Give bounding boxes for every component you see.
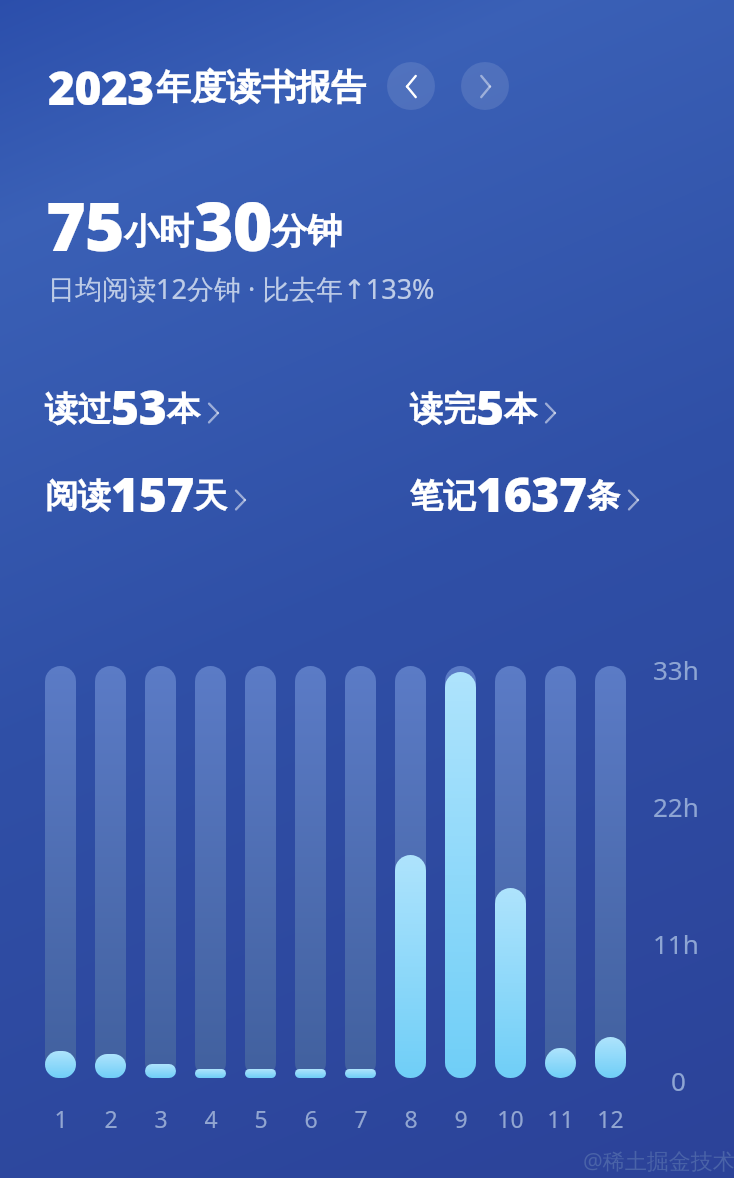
staticText: 1637	[476, 461, 587, 521]
staticText: 1	[54, 1103, 68, 1134]
button[interactable]: Next year	[461, 62, 509, 110]
staticText: 10	[497, 1103, 524, 1134]
staticText: 11	[547, 1103, 574, 1134]
staticText: 阅读	[45, 475, 111, 517]
staticText: 3	[154, 1103, 168, 1134]
button[interactable]: 阅读	[45, 461, 252, 521]
staticText: 年度读书报告	[156, 65, 366, 109]
button[interactable]: 笔记	[410, 461, 645, 521]
staticText: 天	[194, 475, 227, 517]
staticText: 4	[204, 1103, 218, 1134]
staticText: 笔记	[410, 475, 476, 517]
staticText: 7	[354, 1103, 368, 1134]
staticText: 读完	[410, 388, 476, 430]
staticText: 8	[404, 1103, 418, 1134]
staticText: 5	[476, 374, 504, 434]
staticText: 本	[504, 388, 537, 430]
staticText: 75	[46, 178, 124, 258]
staticText: 分钟	[272, 209, 342, 253]
staticText: 5	[254, 1103, 268, 1134]
staticText: 9	[454, 1103, 468, 1134]
staticText: 0	[671, 1063, 686, 1098]
staticText: 小时	[124, 209, 194, 253]
button[interactable]: Previous year	[387, 62, 435, 110]
staticText: 33h	[653, 652, 699, 687]
button[interactable]: 读过	[45, 374, 225, 434]
staticText: 157	[111, 461, 194, 521]
staticText: 30	[194, 178, 272, 258]
staticText: 2023	[48, 56, 154, 118]
staticText: 22h	[653, 789, 699, 824]
staticText: 2	[104, 1103, 118, 1134]
staticText: 本	[167, 388, 200, 430]
staticText: 读过	[45, 388, 111, 430]
staticText: 11h	[653, 926, 699, 961]
staticText: @稀土掘金技术社区	[583, 1145, 734, 1175]
staticText: 条	[587, 475, 620, 517]
staticText: 6	[304, 1103, 318, 1134]
staticText: 12	[597, 1103, 624, 1134]
staticText: 53	[111, 374, 167, 434]
button[interactable]: 读完	[410, 374, 562, 434]
staticText: 日均阅读12分钟 · 比去年↑133%	[48, 270, 435, 307]
